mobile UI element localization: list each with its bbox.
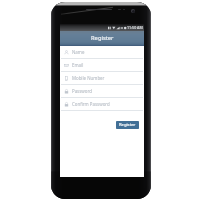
button[interactable]: Password <box>60 85 144 98</box>
staticText: Register <box>119 122 136 128</box>
button[interactable]: Name <box>60 46 144 59</box>
staticText: Confirm Password <box>72 101 110 107</box>
other: Password <box>64 102 69 107</box>
other: Email <box>64 63 69 68</box>
staticText: Mobile Number <box>72 75 105 81</box>
staticText: Password <box>72 88 92 94</box>
staticText: 11:50 AM <box>127 25 143 30</box>
button[interactable]: Email <box>60 59 144 72</box>
other: Password <box>64 89 69 94</box>
button[interactable]: Password <box>60 98 144 111</box>
button[interactable]: Mobile number <box>60 72 144 85</box>
button[interactable]: Register <box>60 31 144 46</box>
other: Name <box>64 50 69 55</box>
staticText: Register <box>91 34 114 42</box>
button[interactable]: Register <box>116 121 139 129</box>
staticText: Name <box>72 49 85 55</box>
other: Mobile number <box>64 76 69 81</box>
staticText: Email <box>72 62 84 68</box>
